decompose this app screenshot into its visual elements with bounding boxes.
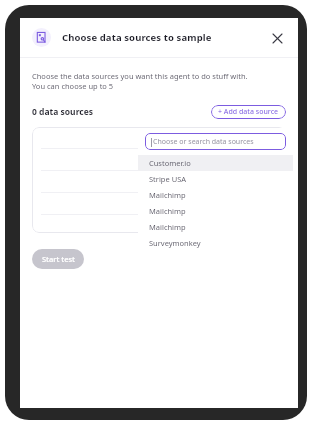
- staticText: Stripe USA: [149, 174, 187, 184]
- button[interactable]: Mailchimp: [138, 203, 293, 219]
- button[interactable]: Start test: [32, 249, 84, 269]
- staticText: Surveymonkey: [149, 238, 201, 248]
- button[interactable]: Close: [268, 29, 286, 47]
- staticText: Customer.io: [149, 158, 191, 168]
- staticText: Mailchimp: [149, 222, 186, 232]
- staticText: Choose data sources to sample: [62, 31, 212, 44]
- button[interactable]: Mailchimp: [138, 187, 293, 203]
- staticText: You can choose up to 5: [32, 81, 114, 91]
- button[interactable]: Choose or search data sources: [145, 133, 286, 150]
- button[interactable]: Stripe USA: [138, 171, 293, 187]
- staticText: Mailchimp: [149, 206, 186, 216]
- staticText: Choose or search data sources: [153, 137, 254, 147]
- staticText: + Add data source: [218, 107, 279, 117]
- button[interactable]: Customer.io: [138, 155, 293, 171]
- button[interactable]: Mailchimp: [138, 219, 293, 235]
- staticText: Start test: [42, 254, 75, 264]
- staticText: 0 data sources: [32, 106, 93, 118]
- staticText: Choose the data sources you want this ag…: [32, 71, 248, 81]
- button[interactable]: Surveymonkey: [138, 235, 293, 251]
- button[interactable]: + Add data source: [211, 105, 286, 119]
- staticText: Mailchimp: [149, 190, 186, 200]
